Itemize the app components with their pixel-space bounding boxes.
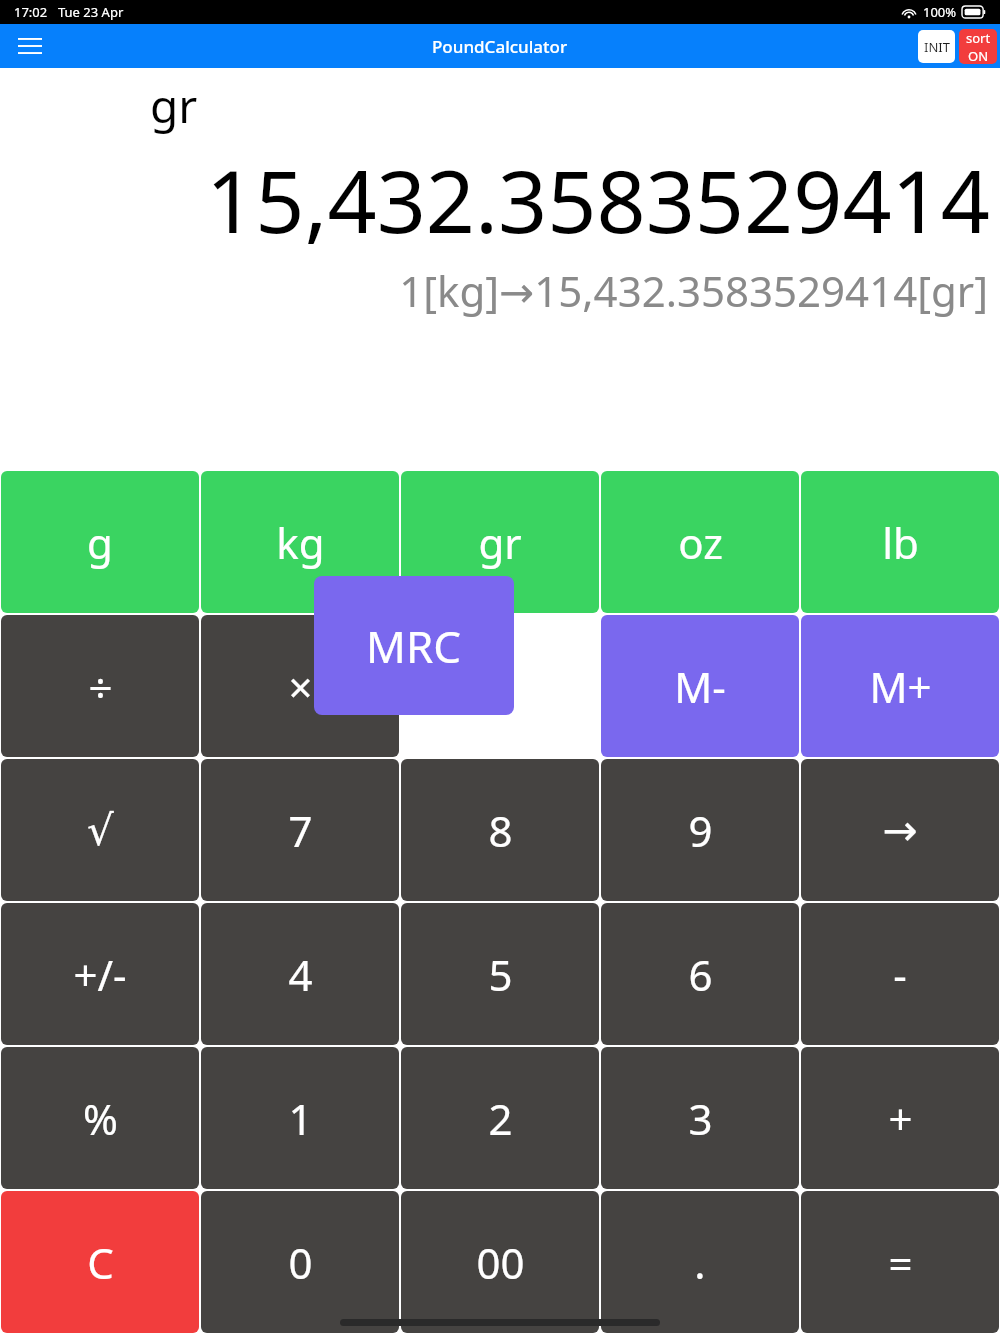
button[interactable]: 1 xyxy=(201,1047,399,1189)
button[interactable]: % xyxy=(1,1047,199,1189)
button[interactable]: 9 xyxy=(601,759,799,901)
button[interactable]: = xyxy=(801,1191,999,1333)
button[interactable]: kg xyxy=(201,471,399,613)
staticText: 1[kg]→15,432.3583529414[gr] xyxy=(12,262,988,319)
button[interactable]: 7 xyxy=(201,759,399,901)
staticText: × xyxy=(288,658,313,715)
button[interactable]: 4 xyxy=(201,903,399,1045)
staticText: INIT xyxy=(924,38,950,56)
staticText: 3 xyxy=(688,1090,713,1147)
staticText: → xyxy=(882,806,918,855)
button[interactable]: → xyxy=(801,759,999,901)
staticText: oz xyxy=(678,514,723,571)
button[interactable]: 0 xyxy=(201,1191,399,1333)
button[interactable]: INIT xyxy=(918,30,955,63)
button[interactable]: 6 xyxy=(601,903,799,1045)
staticText: g xyxy=(87,514,113,571)
staticText: - xyxy=(893,946,907,1003)
button[interactable]: sort xyxy=(959,29,997,64)
button[interactable]: - xyxy=(801,903,999,1045)
button[interactable]: 5 xyxy=(401,903,599,1045)
button[interactable]: 8 xyxy=(401,759,599,901)
staticText: C xyxy=(87,1234,114,1291)
button[interactable]: gr xyxy=(401,471,599,613)
staticText: 15,432.3583529414 xyxy=(10,141,990,258)
staticText: ON xyxy=(968,47,989,64)
staticText: 8 xyxy=(488,802,513,859)
staticText: ÷ xyxy=(88,658,113,715)
staticText: 2 xyxy=(488,1090,513,1147)
button[interactable]: . xyxy=(601,1191,799,1333)
staticText: . xyxy=(694,1234,706,1291)
staticText: + xyxy=(888,1090,913,1147)
button[interactable]: 3 xyxy=(601,1047,799,1189)
staticText: 5 xyxy=(488,946,513,1003)
button[interactable]: M- xyxy=(601,615,799,757)
staticText: +/- xyxy=(73,946,127,1003)
staticText: M+ xyxy=(869,658,932,715)
staticText: = xyxy=(888,1234,913,1291)
staticText: √ xyxy=(87,806,114,855)
staticText: MRC xyxy=(366,616,462,676)
staticText: 6 xyxy=(688,946,713,1003)
staticText: lb xyxy=(882,514,919,571)
button[interactable]: lb xyxy=(801,471,999,613)
staticText: 0 xyxy=(288,1234,313,1291)
button[interactable]: Menu xyxy=(10,26,50,66)
button[interactable]: + xyxy=(801,1047,999,1189)
button[interactable]: M+ xyxy=(801,615,999,757)
staticText: 1 xyxy=(288,1090,313,1147)
staticText: M- xyxy=(674,658,726,715)
staticText: kg xyxy=(276,514,325,571)
button[interactable]: √ xyxy=(1,759,199,901)
button[interactable]: MRC xyxy=(314,576,514,715)
staticText: PoundCalculator xyxy=(432,35,568,58)
staticText: sort xyxy=(966,29,991,47)
staticText: 00 xyxy=(476,1234,525,1291)
staticText: 4 xyxy=(288,946,313,1003)
staticText: 9 xyxy=(688,802,713,859)
staticText: gr xyxy=(150,74,198,137)
button[interactable]: C xyxy=(1,1191,199,1333)
staticText: % xyxy=(83,1090,118,1147)
staticText: 17:02 xyxy=(14,3,48,21)
button[interactable]: × xyxy=(201,615,399,757)
staticText: gr xyxy=(478,514,522,571)
button[interactable]: 00 xyxy=(401,1191,599,1333)
staticText: 100% xyxy=(923,3,957,21)
button[interactable]: +/- xyxy=(1,903,199,1045)
button[interactable]: g xyxy=(1,471,199,613)
button[interactable]: ÷ xyxy=(1,615,199,757)
staticText: 7 xyxy=(288,802,313,859)
button[interactable]: 2 xyxy=(401,1047,599,1189)
staticText: Tue 23 Apr xyxy=(58,3,124,21)
button[interactable]: oz xyxy=(601,471,799,613)
